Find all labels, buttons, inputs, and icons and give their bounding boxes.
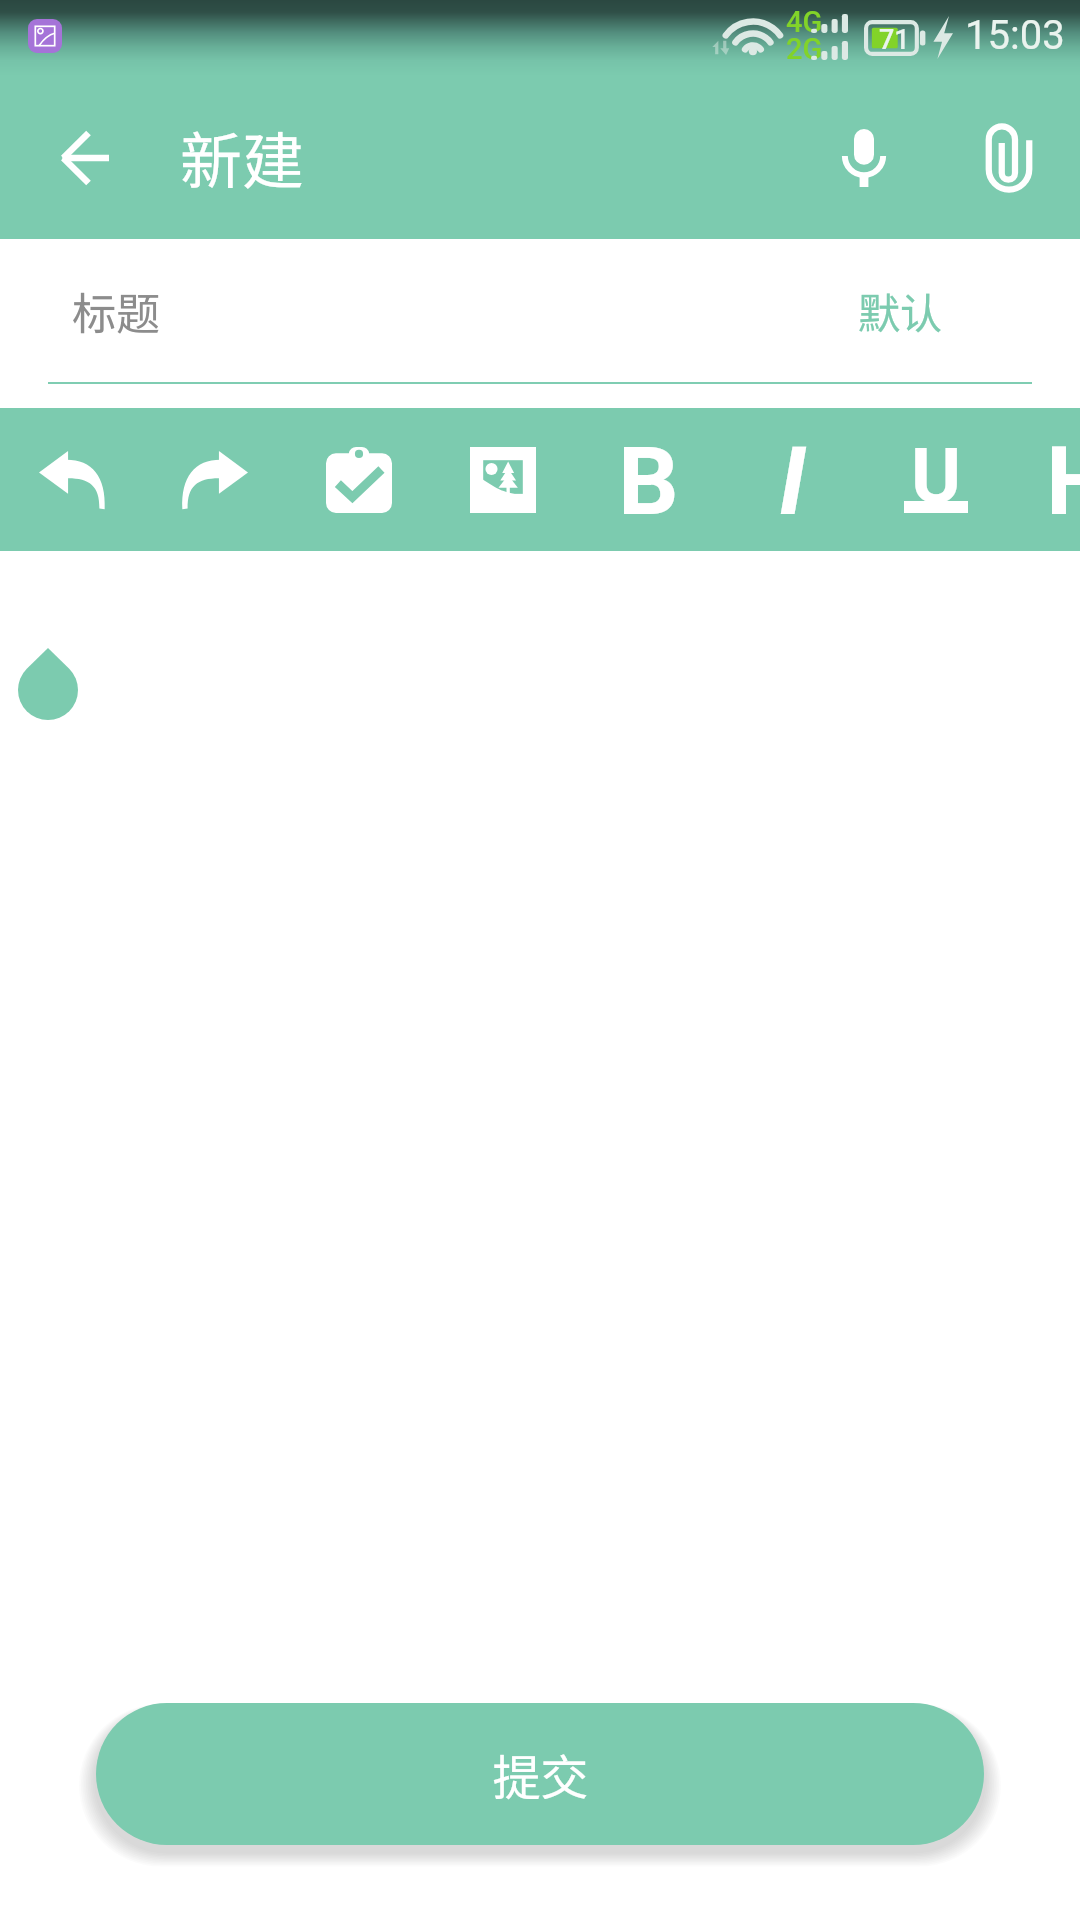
button[interactable]: H	[1009, 408, 1080, 551]
staticText: 提交	[492, 1739, 589, 1809]
button[interactable]: U	[865, 408, 1007, 551]
staticText: 71	[879, 24, 910, 56]
button[interactable]: Undo	[1, 408, 143, 551]
button[interactable]: 默认	[800, 245, 1032, 375]
staticText: I	[779, 426, 806, 537]
button[interactable]: Attach file	[939, 76, 1079, 239]
button[interactable]: B	[577, 408, 719, 551]
button[interactable]: Insert image	[432, 408, 574, 551]
button[interactable]: Checklist	[288, 408, 430, 551]
staticText: 4G	[786, 5, 823, 39]
staticText: 标题	[72, 279, 160, 343]
button[interactable]: Redo	[144, 408, 286, 551]
staticText: 2G	[786, 32, 823, 66]
button[interactable]: 标题	[48, 246, 548, 376]
button[interactable]: 提交	[96, 1703, 984, 1845]
button[interactable]: Voice input	[794, 76, 934, 239]
staticText: 15:03	[965, 12, 1065, 59]
staticText: 新建	[180, 112, 305, 202]
staticText: U	[911, 431, 962, 520]
staticText: H	[1046, 426, 1080, 537]
staticText: 默认	[858, 280, 943, 341]
button[interactable]: Back	[20, 76, 148, 239]
button[interactable]: I	[721, 408, 863, 551]
staticText: B	[618, 426, 679, 537]
